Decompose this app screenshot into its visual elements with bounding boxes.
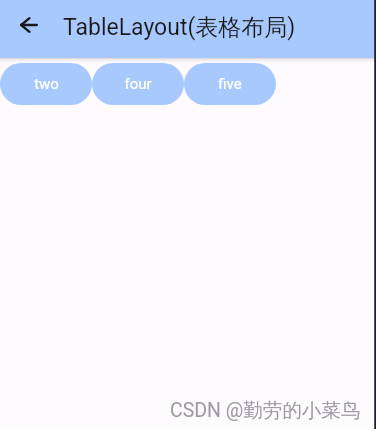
staticText: CSDN @勤劳的小菜鸟: [170, 398, 361, 423]
staticText: TableLayout(表格布局): [63, 13, 296, 42]
button[interactable]: two: [0, 63, 92, 105]
staticText: two: [34, 75, 59, 93]
button[interactable]: five: [184, 63, 276, 105]
button[interactable]: four: [92, 63, 184, 105]
button[interactable]: Navigate up: [8, 8, 50, 50]
staticText: five: [218, 75, 242, 93]
staticText: four: [124, 75, 152, 93]
